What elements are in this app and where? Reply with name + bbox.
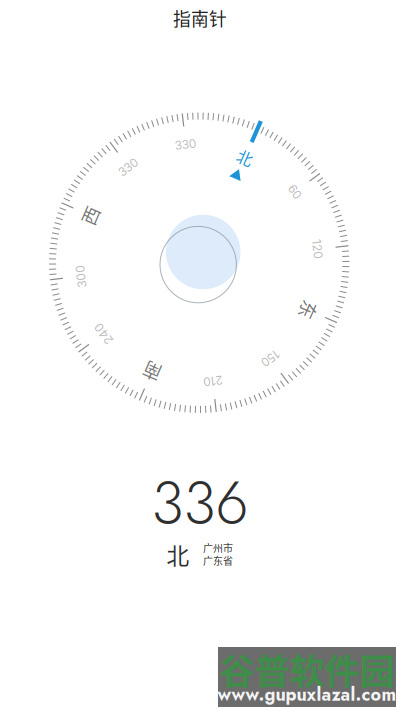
staticText: 谷普软件园 [219,643,394,695]
staticText: 北 [166,538,189,571]
staticText: 东 [299,297,317,323]
staticText: 300 [69,269,92,283]
staticText: 南 [143,359,161,385]
staticText: 广州市 [203,540,233,555]
staticText: 240 [92,326,115,341]
staticText: 336 [152,461,249,545]
staticText: 330 [175,137,197,152]
staticText: 广东省 [203,553,233,568]
staticText: 210 [203,374,223,388]
staticText: 西 [81,202,99,228]
staticText: 150 [260,351,280,366]
staticText: 60 [287,185,302,199]
staticText: www.gupuxlazal.com [217,682,396,707]
staticText: 120 [307,242,327,256]
staticText: 指南针 [173,5,227,31]
staticText: 330 [117,160,139,174]
staticText: 北 [237,146,253,169]
